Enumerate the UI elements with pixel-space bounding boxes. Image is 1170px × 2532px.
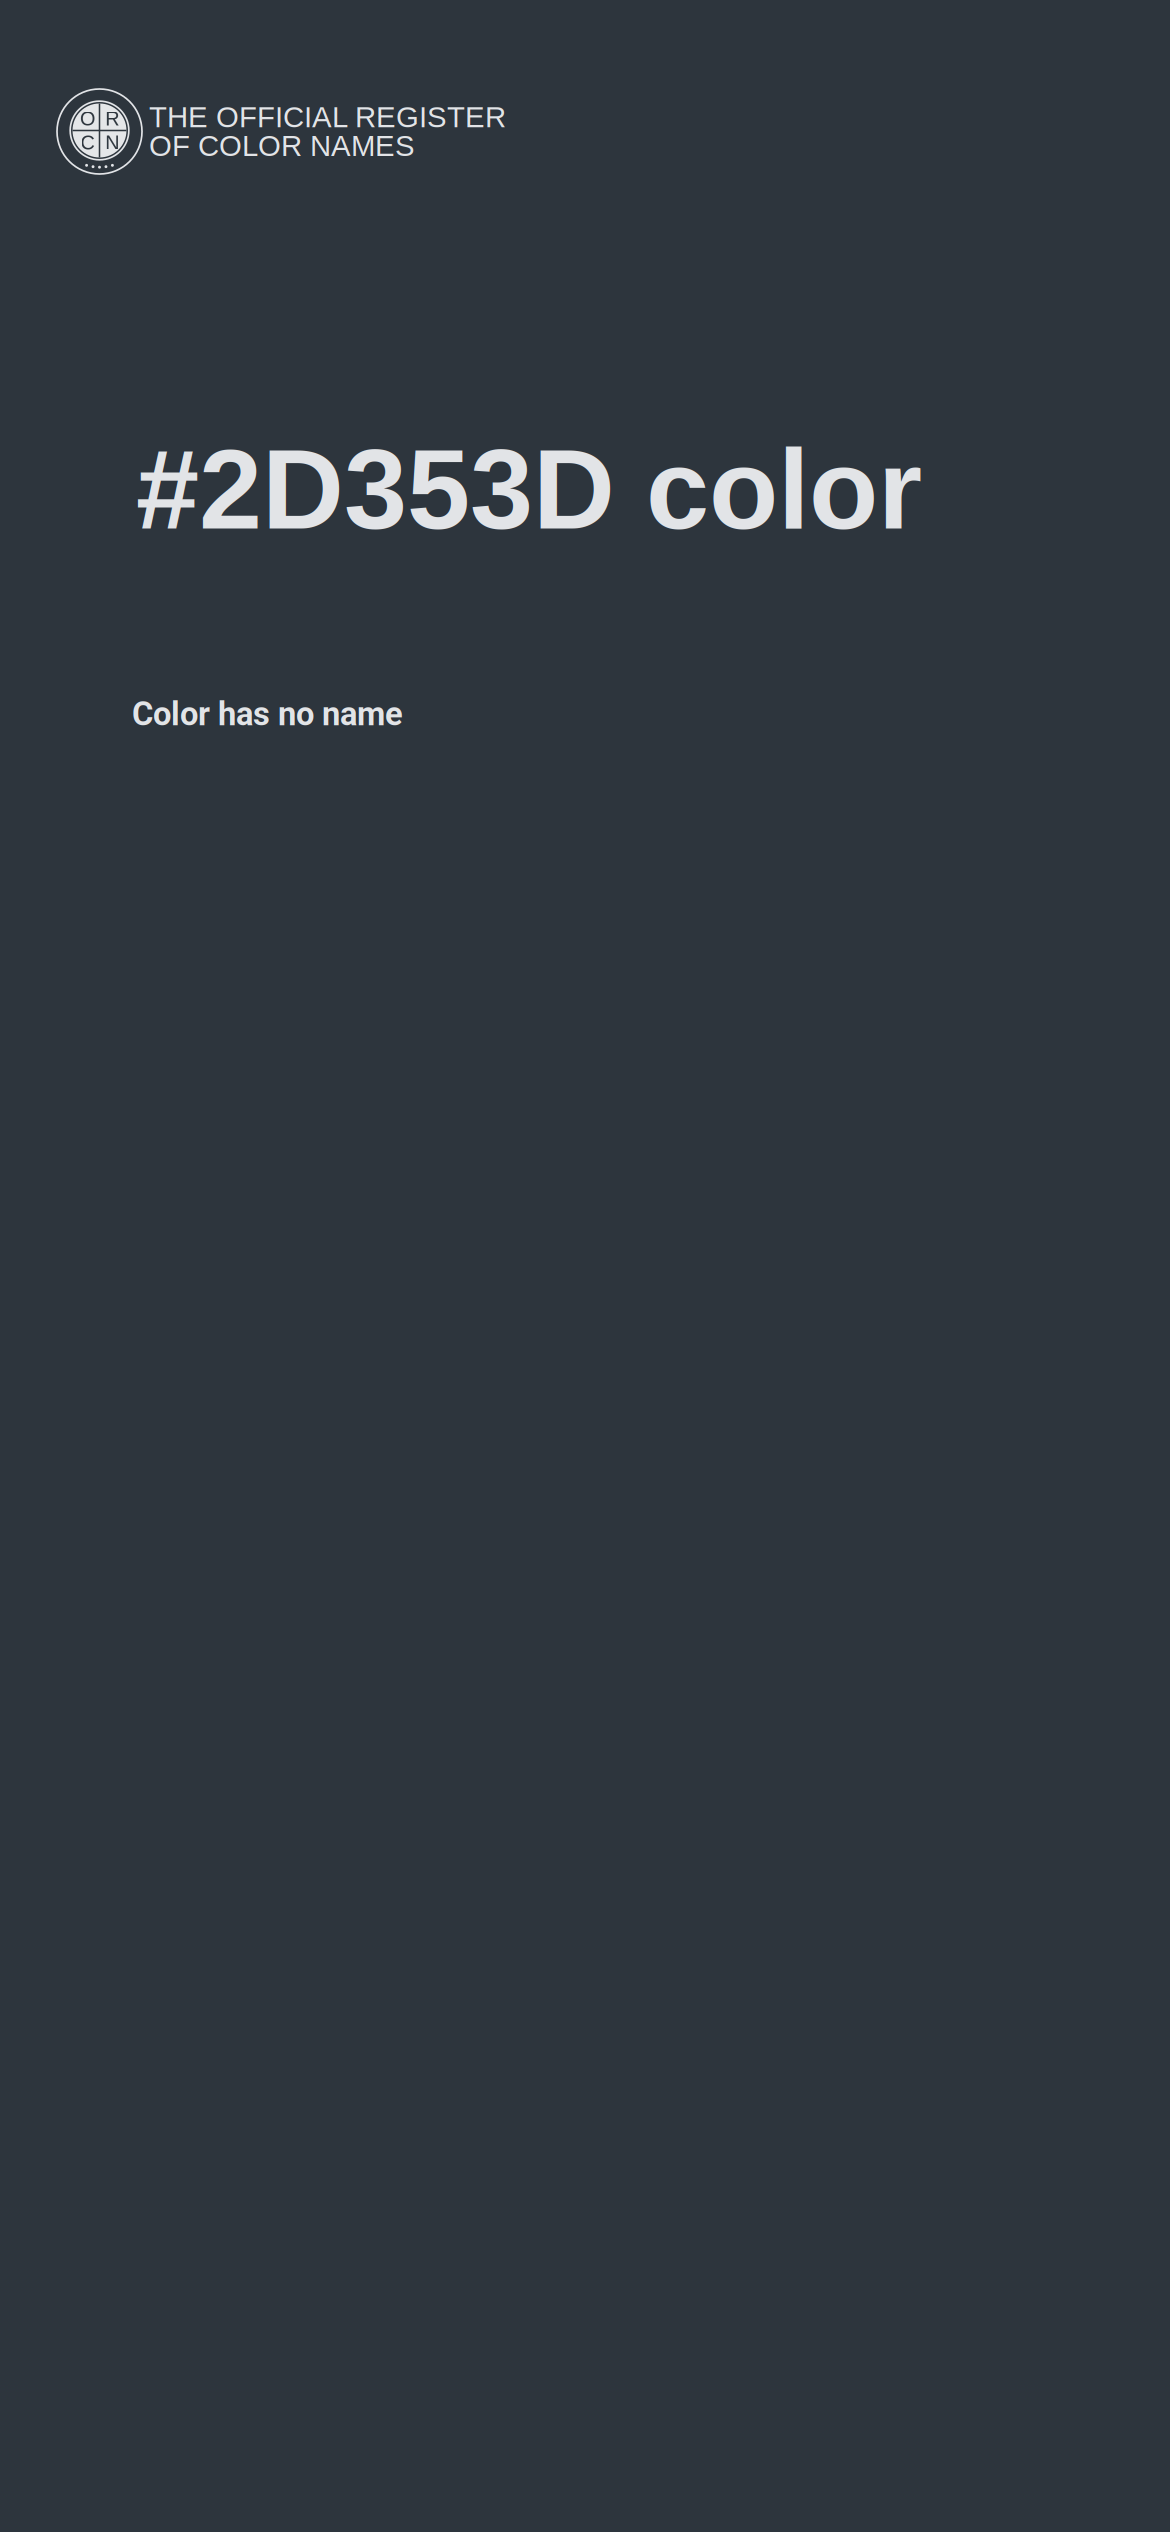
staticText: #2D353D color: [136, 426, 922, 553]
button[interactable]: The Official Register of Color Names — h…: [57, 89, 506, 174]
staticText: Color has no name: [132, 695, 403, 733]
staticText: OF COLOR NAMES: [149, 129, 415, 162]
staticText: THE OFFICIAL REGISTER: [149, 101, 506, 133]
